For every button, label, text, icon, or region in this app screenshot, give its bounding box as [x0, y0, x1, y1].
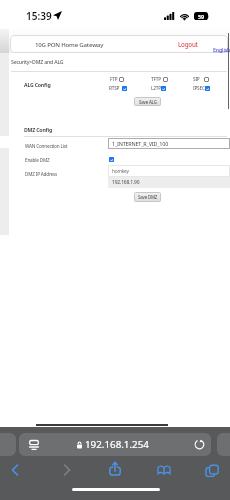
- button[interactable]: Forward: [56, 459, 78, 481]
- button[interactable]: Bookmarks: [153, 459, 175, 481]
- staticText: 15:39: [26, 9, 52, 23]
- button[interactable]: SIP: [193, 76, 200, 82]
- button[interactable]: [204, 77, 209, 82]
- other: Reload: [194, 439, 205, 450]
- button[interactable]: [119, 77, 124, 82]
- button[interactable]: Back: [4, 459, 26, 481]
- staticText: DMZ IP Address: [25, 171, 58, 177]
- button[interactable]: Next tab: [217, 433, 230, 456]
- button[interactable]: Previous tab: [0, 433, 16, 456]
- button[interactable]: Tabs: [201, 460, 223, 482]
- button[interactable]: English: [213, 46, 230, 53]
- button[interactable]: Logout: [178, 40, 198, 48]
- button[interactable]: [109, 157, 114, 162]
- staticText: Save ALG: [139, 99, 157, 105]
- staticText: Enable DMZ: [25, 157, 50, 163]
- staticText: Security>DMZ and ALG: [11, 58, 64, 65]
- button[interactable]: FTP: [110, 76, 118, 82]
- button[interactable]: Save DMZ: [134, 192, 161, 202]
- staticText: 10G PON Home Gateway: [35, 40, 104, 48]
- button[interactable]: [122, 86, 127, 91]
- button[interactable]: L2TP: [151, 85, 161, 91]
- staticText: 1_INTERNET_R_VID_100: [112, 140, 169, 147]
- button[interactable]: Page settings: [19, 433, 211, 456]
- staticText: ALG Config: [24, 81, 51, 88]
- button[interactable]: IPSEC: [193, 85, 205, 91]
- other: Page settings: [29, 440, 39, 450]
- button[interactable]: Save ALG: [134, 97, 161, 106]
- staticText: 192.168.1.90: [112, 179, 140, 186]
- button[interactable]: [205, 86, 210, 91]
- staticText: 59: [198, 13, 204, 20]
- staticText: DMZ Config: [24, 126, 53, 133]
- button[interactable]: Share: [104, 459, 126, 481]
- staticText: WAN Connection List: [25, 143, 68, 149]
- staticText: 192.168.1.254: [85, 438, 149, 451]
- button[interactable]: [163, 77, 168, 82]
- button[interactable]: RTSP: [109, 85, 120, 91]
- button[interactable]: TFTP: [151, 76, 161, 82]
- staticText: homkey: [112, 168, 129, 175]
- staticText: Save DMZ: [138, 194, 158, 200]
- button[interactable]: [161, 86, 166, 91]
